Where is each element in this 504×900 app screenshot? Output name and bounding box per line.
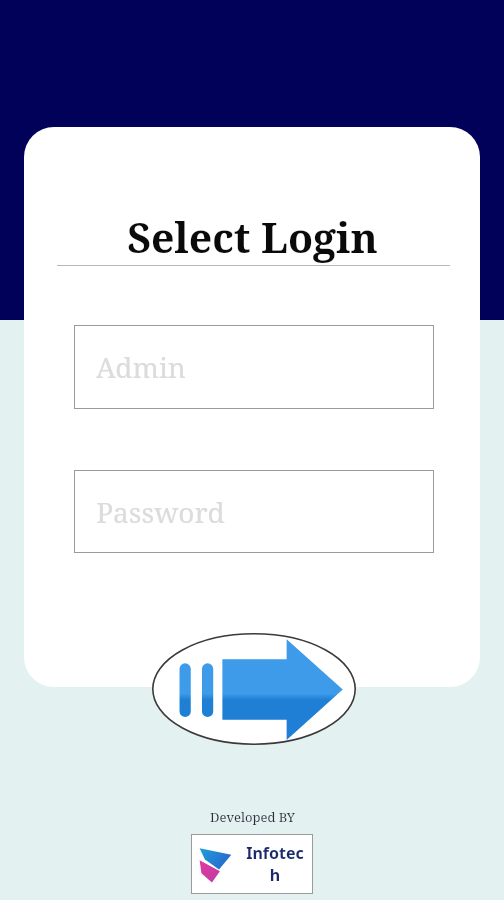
button[interactable]: Admin	[74, 325, 434, 409]
staticText: Password	[96, 493, 225, 531]
staticText: Developed BY	[210, 808, 295, 826]
staticText: Infotech	[243, 842, 307, 886]
staticText: Admin	[96, 348, 186, 386]
button[interactable]: Login	[152, 633, 356, 745]
staticText: Select Login	[127, 209, 378, 265]
button[interactable]: Password	[74, 470, 434, 553]
button[interactable]: Infotech logo	[191, 834, 313, 894]
